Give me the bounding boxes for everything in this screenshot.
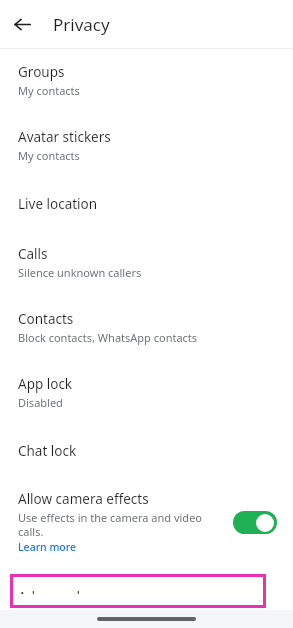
staticText: My contacts [18, 83, 80, 98]
button[interactable]: Calls [0, 231, 293, 296]
staticText: Avatar stickers [18, 128, 111, 146]
staticText: My contacts [18, 148, 80, 163]
button[interactable]: Contacts [0, 296, 293, 361]
staticText: Use effects in the camera and video call… [18, 510, 223, 539]
button[interactable]: App lock [0, 361, 293, 426]
button[interactable]: Allow camera effects toggle [233, 511, 277, 534]
staticText: Contacts [18, 310, 74, 328]
button[interactable]: Groups [0, 49, 293, 114]
staticText: Disabled [18, 395, 63, 410]
staticText: Chat lock [18, 442, 77, 460]
button[interactable]: Advanced [10, 574, 266, 608]
button[interactable]: Allow camera effects [0, 478, 293, 564]
staticText: Silence unknown callers [18, 265, 142, 280]
staticText: App lock [18, 375, 73, 393]
staticText: Live location [18, 195, 98, 213]
staticText: Learn more [18, 540, 77, 554]
staticText: Allow camera effects [18, 490, 149, 508]
button[interactable]: Learn more [18, 540, 77, 554]
button[interactable]: Back [8, 10, 36, 38]
staticText: Calls [18, 245, 48, 263]
button[interactable]: Chat lock [0, 426, 293, 478]
staticText: Groups [18, 63, 65, 81]
staticText: Privacy [53, 13, 110, 36]
button[interactable]: Live location [0, 179, 293, 231]
button[interactable]: Avatar stickers [0, 114, 293, 179]
staticText: Advanced [18, 588, 81, 594]
staticText: Block contacts, WhatsApp contacts [18, 330, 198, 345]
